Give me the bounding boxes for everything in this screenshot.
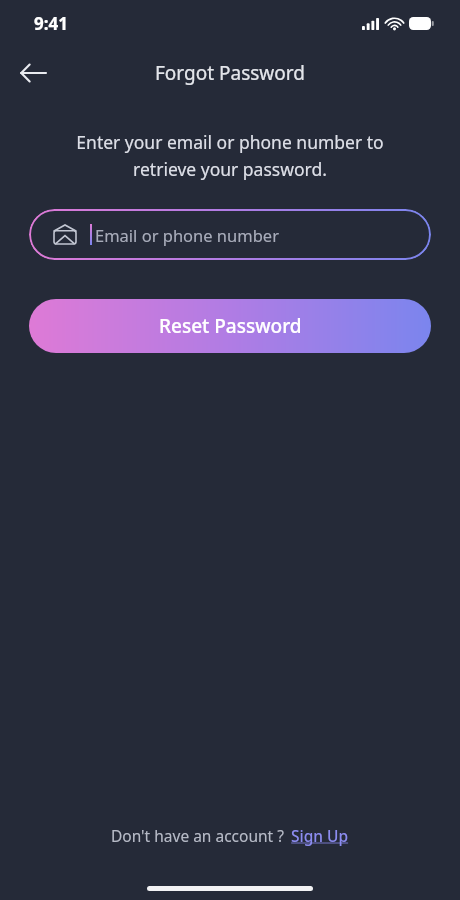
staticText: Email or phone number: [95, 224, 279, 246]
staticText: 9:41: [34, 12, 68, 35]
staticText: Sign Up: [291, 825, 349, 846]
button[interactable]: Reset Password: [29, 299, 431, 353]
staticText: Don't have an account ?: [111, 825, 284, 846]
staticText: Enter your email or phone number to retr…: [28, 130, 432, 181]
staticText: Forgot Password: [155, 60, 305, 86]
staticText: Reset Password: [159, 313, 302, 339]
button[interactable]: Back: [10, 50, 56, 96]
button[interactable]: Sign Up: [291, 825, 349, 846]
button[interactable]: Email or phone number: [29, 209, 431, 260]
